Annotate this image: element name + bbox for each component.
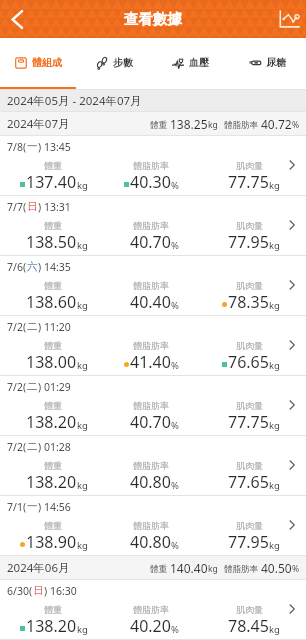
staticText: 40.80 [130, 531, 171, 553]
staticText: 2024年05月 - 2024年07月 [7, 93, 142, 109]
staticText: 體組成 [32, 56, 62, 69]
staticText: 137.40 [26, 171, 77, 193]
staticText: kg [208, 563, 218, 575]
staticText: % [292, 563, 300, 575]
button[interactable]: Back [0, 0, 33, 38]
staticText: 77.75 [228, 171, 269, 193]
staticText: % [171, 539, 179, 552]
staticText: 體重 [44, 460, 62, 471]
staticText: 血壓 [189, 56, 209, 69]
staticText: 138.50 [26, 231, 77, 253]
staticText: 體重 [44, 340, 62, 351]
staticText: 138.25 [170, 116, 208, 132]
staticText: % [171, 239, 179, 252]
staticText: 肌肉量 [236, 604, 263, 615]
staticText: 體脂肪率 [224, 119, 261, 131]
staticText: 二 [27, 320, 38, 333]
button[interactable]: 7/6( [0, 256, 306, 316]
staticText: 六 [27, 260, 38, 273]
staticText: 肌肉量 [236, 400, 263, 411]
staticText: 體重 [44, 520, 62, 531]
staticText: kg [269, 359, 280, 372]
staticText: 77.65 [228, 471, 269, 493]
staticText: 體重 [44, 160, 62, 171]
staticText: 肌肉量 [236, 220, 263, 231]
staticText: 40.30 [130, 171, 171, 193]
button[interactable]: 6/30( [0, 580, 306, 640]
staticText: 體脂肪率 [133, 520, 169, 531]
staticText: 體脂肪率 [133, 220, 169, 231]
staticText: 體脂肪率 [224, 563, 261, 575]
staticText: kg [77, 299, 88, 312]
button[interactable]: Chart [273, 0, 306, 38]
staticText: kg [77, 239, 88, 252]
staticText: 2024年06月 [7, 560, 70, 576]
staticText: 140.40 [170, 560, 208, 576]
staticText: kg [269, 623, 280, 636]
staticText: % [171, 299, 179, 312]
button[interactable]: 尿糖 [229, 38, 306, 87]
staticText: 體重 [44, 400, 62, 411]
staticText: kg [269, 179, 280, 192]
button[interactable]: 步數 [76, 38, 152, 87]
staticText: % [171, 359, 179, 372]
button[interactable]: 7/2( [0, 316, 306, 376]
staticText: % [171, 479, 179, 492]
staticText: 肌肉量 [236, 340, 263, 351]
staticText: 6/30( [7, 584, 33, 598]
staticText: 二 [27, 380, 38, 393]
staticText: ) 11:20 [38, 320, 71, 334]
staticText: 肌肉量 [236, 520, 263, 531]
staticText: 77.95 [228, 531, 269, 553]
button[interactable]: 體組成 [0, 38, 76, 87]
staticText: 7/7( [7, 200, 27, 214]
staticText: 138.90 [26, 531, 77, 553]
button[interactable]: 7/8( [0, 136, 306, 196]
staticText: 78.35 [228, 291, 269, 313]
staticText: 7/1( [7, 500, 27, 514]
staticText: % [171, 419, 179, 432]
staticText: 40.70 [130, 231, 171, 253]
staticText: 7/2( [7, 380, 27, 394]
staticText: 7/6( [7, 260, 27, 274]
staticText: 一 [27, 140, 38, 153]
staticText: kg [77, 359, 88, 372]
staticText: 體脂肪率 [133, 160, 169, 171]
staticText: 一 [27, 500, 38, 513]
staticText: 7/8( [7, 140, 27, 154]
staticText: 體脂肪率 [133, 460, 169, 471]
staticText: ) 01:29 [38, 380, 71, 394]
staticText: ) 16:30 [44, 584, 77, 598]
button[interactable]: 血壓 [152, 38, 229, 87]
button[interactable]: 7/1( [0, 496, 306, 556]
staticText: 138.20 [26, 411, 77, 433]
button[interactable]: 7/2( [0, 436, 306, 496]
staticText: kg [269, 479, 280, 492]
staticText: 二 [27, 440, 38, 453]
staticText: 肌肉量 [236, 460, 263, 471]
staticText: ) 13:45 [38, 140, 71, 154]
staticText: 40.80 [130, 471, 171, 493]
staticText: 77.75 [228, 411, 269, 433]
staticText: 40.20 [130, 615, 171, 637]
staticText: 體重 [44, 604, 62, 615]
staticText: kg [77, 419, 88, 432]
staticText: 體脂肪率 [133, 280, 169, 291]
staticText: % [171, 179, 179, 192]
button[interactable]: 7/2( [0, 376, 306, 436]
staticText: % [171, 623, 179, 636]
staticText: 日 [27, 200, 38, 213]
button[interactable]: 7/7( [0, 196, 306, 256]
staticText: kg [208, 119, 218, 131]
staticText: kg [269, 299, 280, 312]
staticText: 體重 [44, 220, 62, 231]
staticText: 體重 [44, 280, 62, 291]
staticText: 41.40 [130, 351, 171, 373]
staticText: 肌肉量 [236, 280, 263, 291]
staticText: kg [269, 419, 280, 432]
staticText: 40.50 [261, 560, 292, 576]
staticText: 138.60 [26, 291, 77, 313]
staticText: 138.00 [26, 351, 77, 373]
staticText: 7/2( [7, 440, 27, 454]
staticText: 138.20 [26, 471, 77, 493]
